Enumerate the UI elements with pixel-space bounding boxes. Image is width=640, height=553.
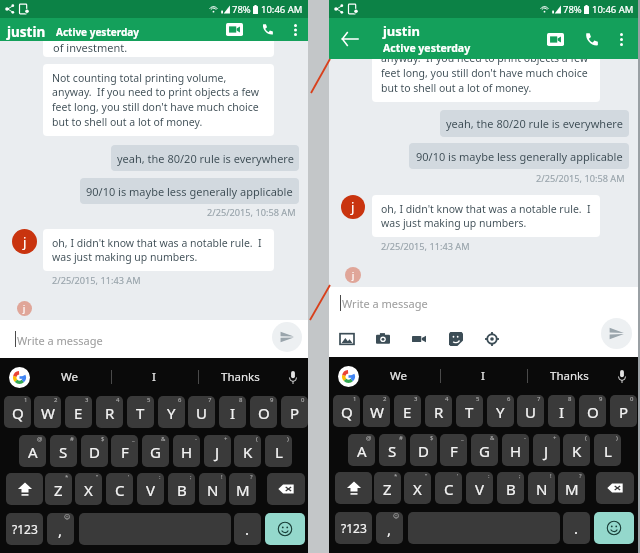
button[interactable]: C	[106, 473, 133, 505]
button[interactable]: Contact avatar	[17, 301, 32, 316]
button[interactable]: M	[229, 473, 256, 505]
button[interactable]: P	[610, 395, 637, 427]
button[interactable]: I	[118, 358, 190, 396]
button[interactable]: M	[558, 472, 585, 504]
button[interactable]: Write a message	[342, 296, 428, 311]
button[interactable]: Contact avatar	[345, 267, 361, 283]
button[interactable]: O	[250, 396, 277, 428]
button[interactable]: S	[50, 435, 77, 467]
staticText: U	[196, 403, 207, 423]
button[interactable]	[267, 473, 305, 505]
button[interactable]: Y	[487, 395, 514, 427]
button[interactable]: Voice input	[612, 366, 632, 386]
button[interactable]: Location	[481, 328, 503, 350]
button[interactable]: V	[137, 473, 164, 505]
button[interactable]: Z	[374, 472, 401, 504]
button[interactable]: T	[456, 395, 483, 427]
button[interactable]: L	[594, 434, 621, 466]
button[interactable]: W	[34, 396, 61, 428]
button[interactable]: I	[219, 396, 246, 428]
button[interactable]: V	[466, 472, 493, 504]
button[interactable]: Y	[158, 396, 185, 428]
button[interactable]: Thanks	[204, 358, 276, 396]
button[interactable]: W	[363, 395, 390, 427]
button[interactable]: X	[75, 473, 102, 505]
button[interactable]: G	[471, 434, 498, 466]
button[interactable]: Call	[577, 25, 605, 53]
button[interactable]: Photo	[336, 328, 358, 350]
button[interactable]	[335, 472, 372, 504]
button[interactable]: Google search	[9, 367, 30, 388]
button[interactable]: B	[168, 473, 195, 505]
button[interactable]	[265, 513, 305, 545]
button[interactable]: L	[265, 435, 292, 467]
button[interactable]: X	[404, 472, 431, 504]
button[interactable]: .	[563, 512, 590, 544]
staticText: "	[96, 473, 99, 481]
button[interactable]	[596, 472, 634, 504]
button[interactable]: Z	[45, 473, 72, 505]
button[interactable]: N	[528, 472, 555, 504]
button[interactable]: Send	[601, 318, 632, 349]
button[interactable]: J	[533, 434, 560, 466]
button[interactable]: I	[548, 395, 575, 427]
button[interactable]: H	[173, 435, 200, 467]
button[interactable]: N	[199, 473, 226, 505]
button[interactable]: J	[204, 435, 231, 467]
button[interactable]: B	[497, 472, 524, 504]
button[interactable]: T	[127, 396, 154, 428]
button[interactable]: S	[379, 434, 406, 466]
button[interactable]: ,	[47, 513, 74, 545]
button[interactable]: K	[234, 435, 261, 467]
staticText: 90/10 is maybe less generally applicable	[416, 149, 623, 164]
button[interactable]: H	[502, 434, 529, 466]
button[interactable]: Q	[333, 395, 360, 427]
button[interactable]: We	[33, 358, 105, 396]
button[interactable]: Contact avatar	[12, 229, 37, 254]
button[interactable]: F	[440, 434, 467, 466]
button[interactable]: ?123	[6, 513, 43, 545]
button[interactable]: D	[410, 434, 437, 466]
button[interactable]	[6, 473, 43, 505]
button[interactable]: G	[142, 435, 169, 467]
button[interactable]: Camera	[372, 328, 394, 350]
button[interactable]	[594, 512, 634, 544]
button[interactable]: We	[362, 357, 434, 395]
button[interactable]: A	[19, 435, 46, 467]
button[interactable]: ,	[376, 512, 403, 544]
button[interactable]: Back	[329, 18, 370, 59]
button[interactable]: More options	[609, 27, 633, 51]
button[interactable]: U	[188, 396, 215, 428]
button[interactable]: Google search	[338, 366, 359, 387]
button[interactable]: A	[348, 434, 375, 466]
button[interactable]: .	[234, 513, 261, 545]
button[interactable]: Write a message	[0, 320, 308, 358]
button[interactable]: Video call	[223, 18, 246, 41]
button[interactable]: E	[394, 395, 421, 427]
button[interactable]: Thanks	[533, 357, 605, 395]
button[interactable]: Video call	[541, 25, 569, 53]
button[interactable]: C	[435, 472, 462, 504]
button[interactable]: Call	[256, 18, 279, 41]
button[interactable]: Sticker	[445, 328, 467, 350]
staticText: !	[550, 472, 552, 480]
button[interactable]: R	[425, 395, 452, 427]
button[interactable]: More options	[285, 20, 305, 40]
button[interactable]: P	[281, 396, 308, 428]
button[interactable]: U	[517, 395, 544, 427]
button[interactable]: Q	[4, 396, 31, 428]
button[interactable]: K	[563, 434, 590, 466]
button[interactable]: Video	[408, 328, 430, 350]
button[interactable]: F	[111, 435, 138, 467]
button[interactable]: E	[65, 396, 92, 428]
button[interactable]: R	[96, 396, 123, 428]
button[interactable]: ?123	[335, 512, 372, 544]
button[interactable]: D	[81, 435, 108, 467]
button[interactable]: Contact avatar	[341, 195, 365, 219]
button[interactable]: I	[447, 357, 519, 395]
button[interactable]: O	[579, 395, 606, 427]
button[interactable]: Send	[272, 322, 302, 352]
button[interactable]: Voice input	[283, 367, 303, 387]
